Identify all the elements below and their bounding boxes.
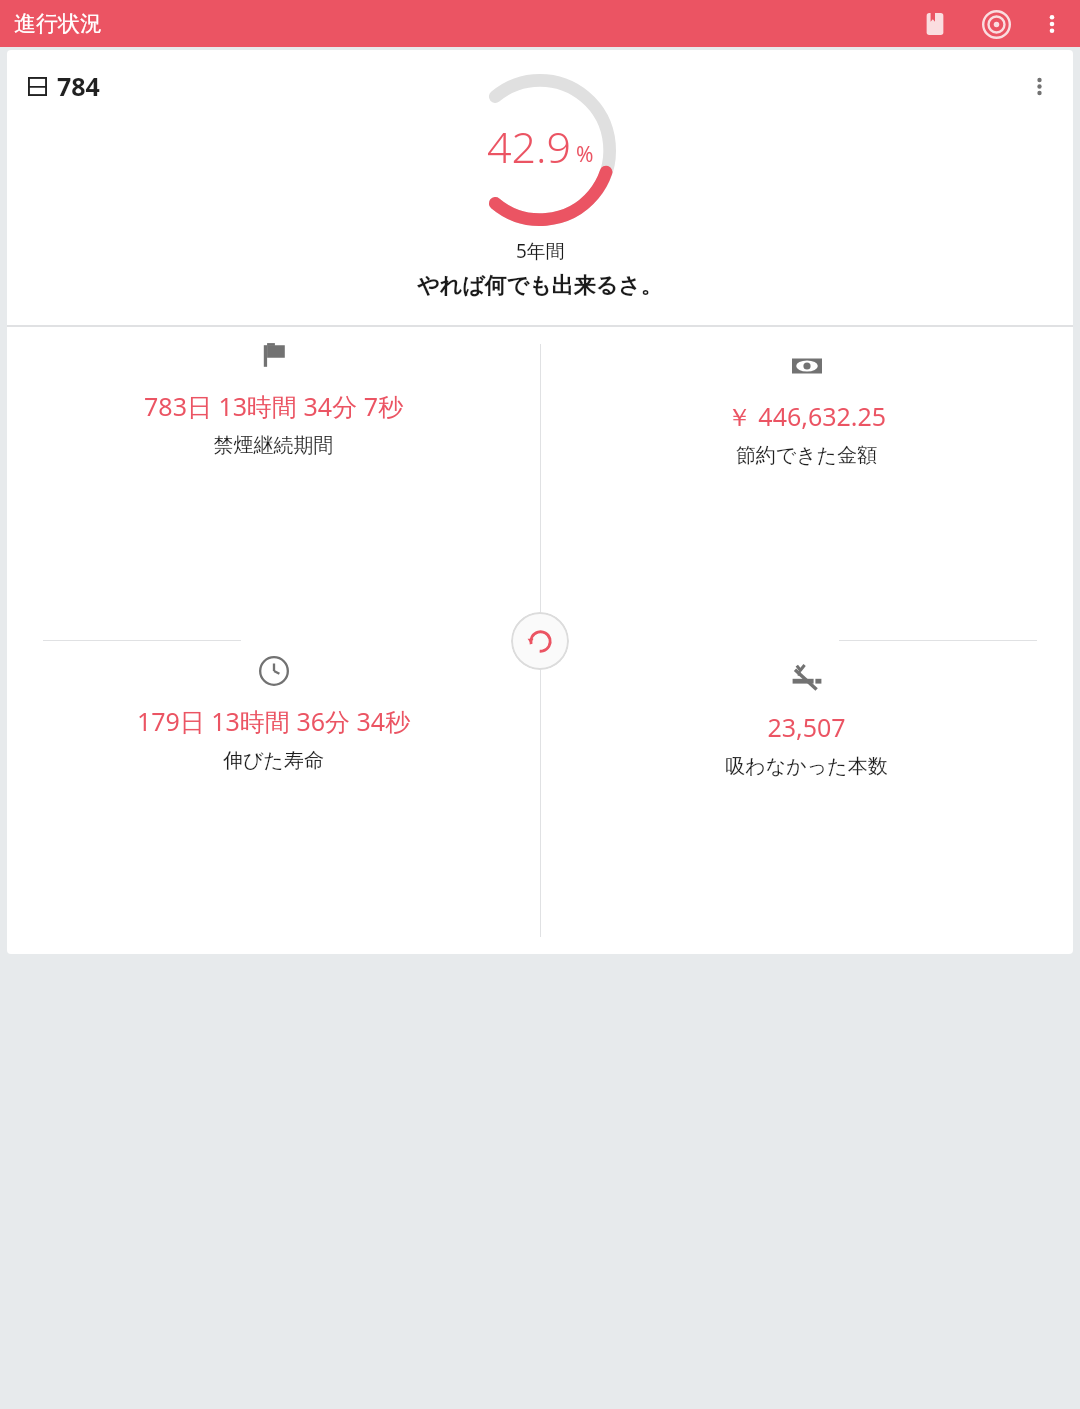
staticText: 吸わなかった本数 (556, 754, 1057, 779)
button[interactable]: 23,507 (540, 640, 1073, 954)
button[interactable]: More options (1030, 2, 1074, 46)
staticText: ￥ 446,632.25 (556, 399, 1057, 433)
staticText: 禁煙継続期間 (23, 433, 524, 458)
button[interactable]: Diary (913, 2, 957, 46)
staticText: 42.9 (487, 117, 572, 176)
button[interactable]: ￥ 446,632.25 (540, 327, 1073, 640)
staticText: やれば何でも出来るさ。 (417, 272, 663, 300)
button[interactable]: Reset (511, 612, 569, 670)
staticText: 節約できた金額 (556, 443, 1057, 468)
button[interactable]: Goals (974, 2, 1018, 46)
staticText: 179日 13時間 36分 34秒 (23, 704, 524, 738)
staticText: 伸びた寿命 (23, 748, 524, 773)
button[interactable]: 783日 13時間 34分 7秒 (7, 327, 540, 640)
staticText: % (576, 140, 594, 169)
button[interactable]: Card menu (1017, 64, 1061, 108)
staticText: 784 (57, 69, 100, 103)
button[interactable]: 179日 13時間 36分 34秒 (7, 640, 540, 954)
staticText: 進行状況 (14, 10, 102, 38)
staticText: 5年間 (516, 238, 565, 264)
staticText: 23,507 (556, 710, 1057, 744)
staticText: 783日 13時間 34分 7秒 (23, 389, 524, 423)
